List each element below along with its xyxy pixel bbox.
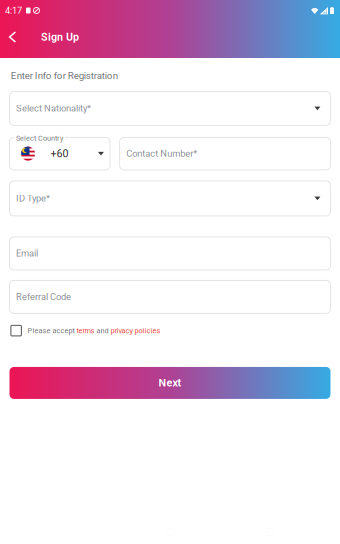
- button[interactable]: Please accept: [27, 326, 76, 335]
- staticText: Sign Up: [41, 31, 79, 43]
- staticText: Select Country: [16, 134, 63, 142]
- button[interactable]: Accept terms and privacy policies: [11, 325, 21, 336]
- staticText: Enter Info for Registration: [11, 70, 118, 81]
- staticText: Next: [158, 377, 181, 389]
- staticText: Email: [16, 248, 38, 259]
- staticText: privacy policies: [110, 326, 160, 335]
- staticText: terms: [76, 326, 94, 335]
- button[interactable]: Back: [0, 21, 25, 53]
- staticText: Contact Number*: [126, 148, 197, 159]
- staticText: +60: [51, 147, 69, 160]
- button[interactable]: and: [94, 326, 110, 335]
- staticText: and: [94, 326, 110, 335]
- staticText: Select Nationality*: [16, 103, 91, 114]
- staticText: 4:17: [5, 5, 22, 16]
- button[interactable]: Next: [9, 367, 330, 399]
- staticText: Please accept: [27, 326, 76, 335]
- staticText: ID Type*: [16, 193, 50, 204]
- button[interactable]: ID Type*: [9, 181, 330, 216]
- button[interactable]: Referral Code: [9, 280, 330, 313]
- button[interactable]: Select Country: [9, 137, 110, 170]
- button[interactable]: privacy policies: [110, 326, 160, 335]
- button[interactable]: Select Nationality*: [9, 91, 330, 125]
- button[interactable]: terms: [76, 326, 94, 335]
- button[interactable]: Contact Number*: [120, 137, 330, 170]
- button[interactable]: Email: [9, 237, 330, 270]
- staticText: Referral Code: [16, 291, 71, 302]
